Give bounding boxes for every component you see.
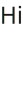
staticText: Hi	[0, 0, 23, 30]
